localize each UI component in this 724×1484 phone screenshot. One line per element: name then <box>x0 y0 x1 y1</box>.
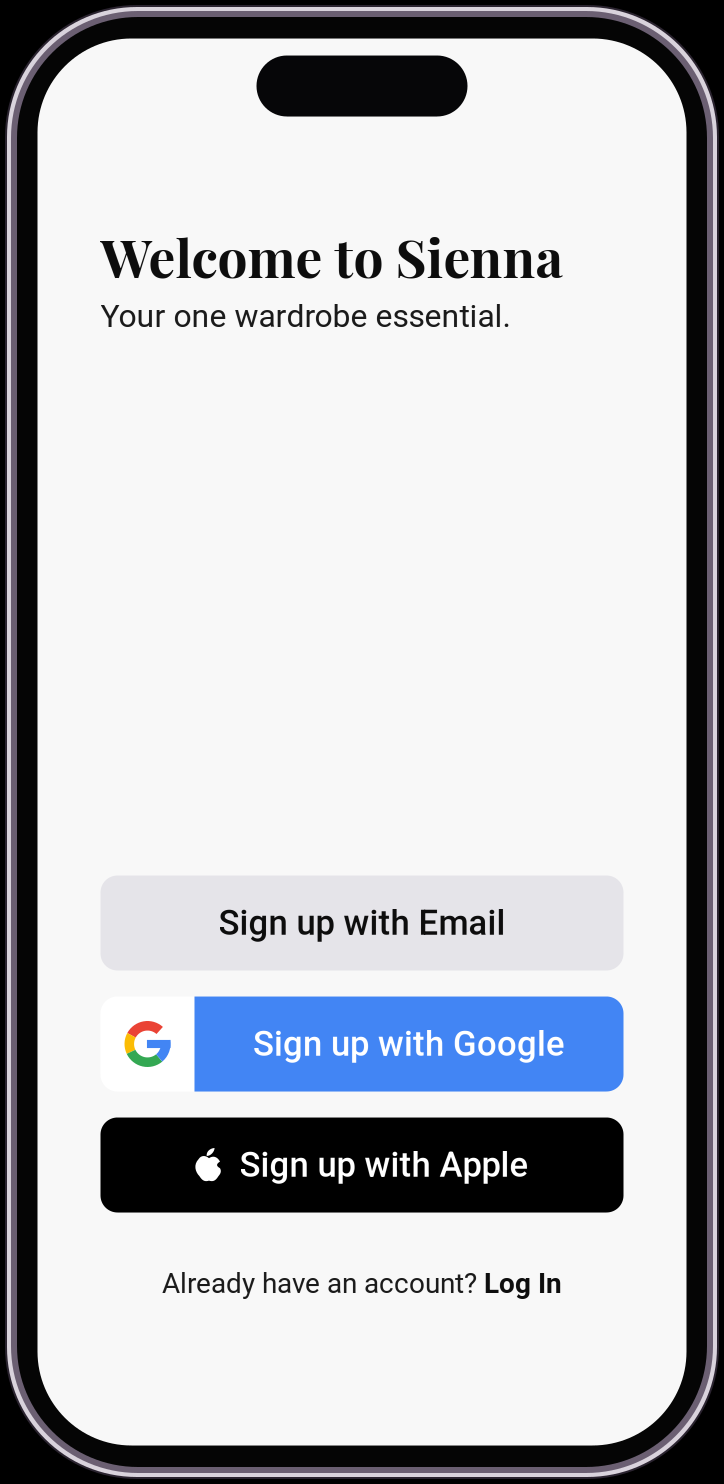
staticText: Sign up with Email <box>218 903 505 943</box>
button[interactable]: Sign up with Google <box>100 996 623 1091</box>
staticText: Welcome to Sienna <box>100 220 563 291</box>
staticText: Already have an account? <box>162 1267 484 1300</box>
button[interactable]: Sign up with Email <box>100 875 623 970</box>
staticText: Log In <box>484 1267 562 1300</box>
staticText: Sign up with Google <box>253 1024 565 1064</box>
button[interactable]: Sign up with Apple <box>100 1117 623 1212</box>
staticText: Your one wardrobe essential. <box>100 297 510 335</box>
staticText: Sign up with Apple <box>240 1145 529 1185</box>
button[interactable]: Already have an account? <box>100 1251 623 1315</box>
